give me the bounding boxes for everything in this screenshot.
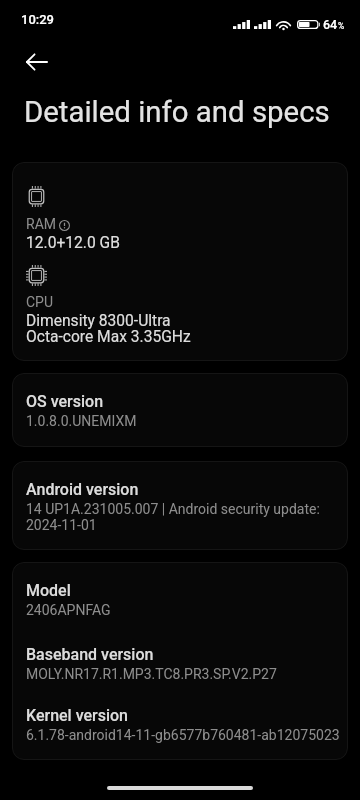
- staticText: Detailed info and specs: [24, 95, 330, 129]
- staticText: 12.0+12.0 GB: [26, 235, 120, 251]
- staticText: 14 UP1A.231005.007 | Android security up…: [26, 501, 320, 533]
- staticText: Android version: [26, 481, 139, 499]
- staticText: 6.1.78-android14-11-gb6577b760481-ab1207…: [26, 727, 340, 743]
- staticText: 2406APNFAG: [26, 602, 111, 618]
- button[interactable]: Model: [12, 562, 348, 760]
- staticText: 1.0.8.0.UNEMIXM: [26, 413, 137, 429]
- staticText: Baseband version: [26, 646, 154, 664]
- button[interactable]: Android version: [12, 461, 348, 550]
- staticText: 64: [323, 19, 338, 32]
- button[interactable]: OS version: [12, 373, 348, 447]
- staticText: RAM: [26, 216, 56, 232]
- staticText: %: [338, 22, 345, 31]
- staticText: OS version: [26, 393, 104, 411]
- staticText: 10:29: [21, 12, 54, 27]
- staticText: CPU: [26, 294, 54, 310]
- staticText: Kernel version: [26, 707, 129, 725]
- button[interactable]: RAM: [12, 162, 348, 361]
- staticText: Dimensity 8300-Ultra Octa-core Max 3.35G…: [26, 313, 191, 345]
- button[interactable]: Back: [14, 39, 60, 85]
- staticText: Model: [26, 582, 71, 600]
- staticText: MOLY.NR17.R1.MP3.TC8.PR3.SP.V2.P27: [26, 666, 277, 682]
